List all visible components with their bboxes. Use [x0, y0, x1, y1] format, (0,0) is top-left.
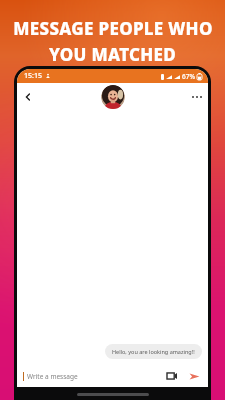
staticText: Write a message	[27, 372, 78, 381]
button[interactable]: Back	[17, 86, 39, 108]
button[interactable]: Write a message	[27, 372, 164, 381]
staticText: YOU MATCHED PREVIOUSLY	[6, 43, 219, 89]
button[interactable]: Profile photo	[101, 85, 125, 109]
staticText: 67%	[182, 72, 195, 81]
button[interactable]: Send video	[164, 368, 180, 384]
staticText: 15:15	[24, 71, 42, 81]
button[interactable]: Send	[186, 368, 202, 384]
button[interactable]: More options	[186, 86, 208, 108]
button[interactable]: Hello, you are looking amazing!!	[105, 344, 202, 359]
staticText: MESSAGE PEOPLE WHO	[13, 17, 213, 40]
staticText: Hello, you are looking amazing!!	[112, 348, 195, 355]
